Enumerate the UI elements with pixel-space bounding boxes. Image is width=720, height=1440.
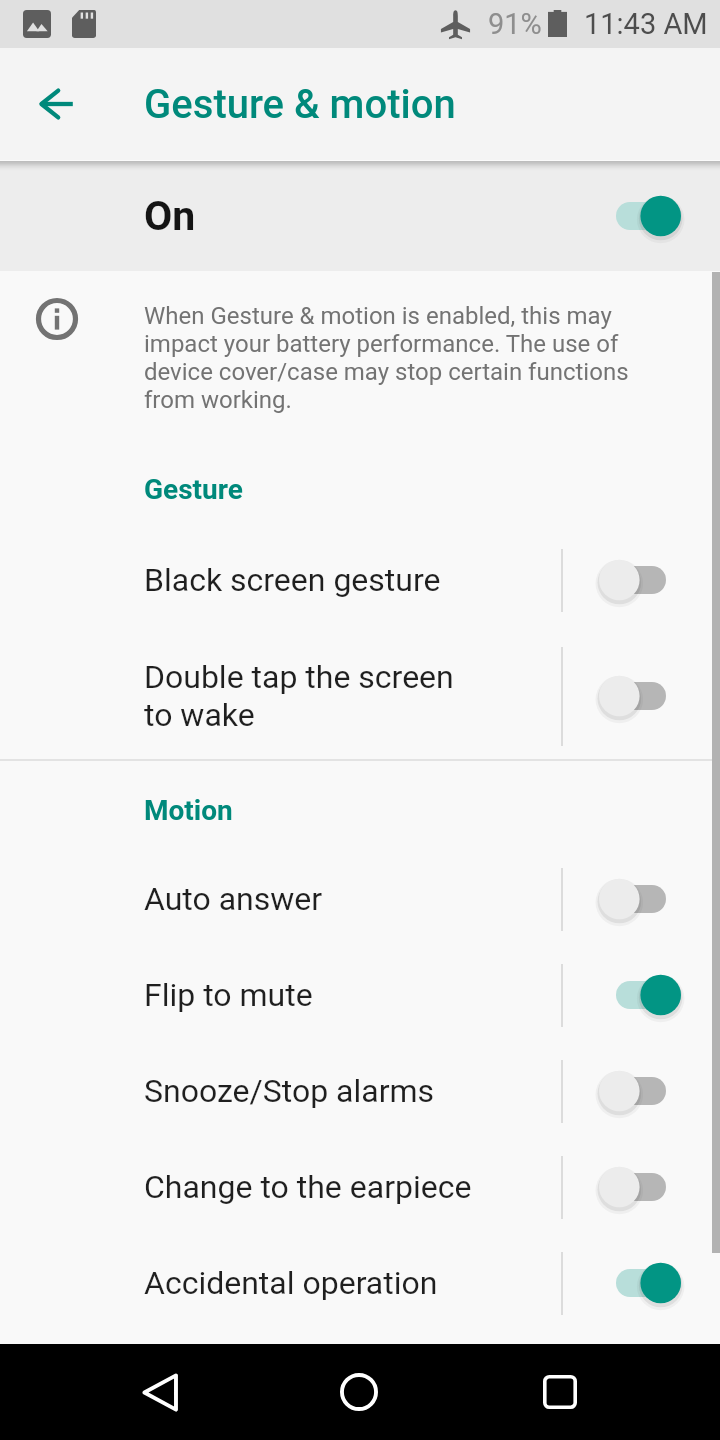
button[interactable]: Auto answer: [0, 851, 720, 947]
button[interactable]: Home: [309, 1344, 409, 1440]
staticText: Black screen gesture: [144, 561, 441, 599]
staticText: Gesture: [144, 473, 243, 506]
button[interactable]: Flip to mute: [0, 947, 720, 1043]
button[interactable]: Change to the earpiece: [0, 1139, 720, 1235]
button[interactable]: Back: [110, 1344, 210, 1440]
button[interactable]: Recent apps: [510, 1344, 610, 1440]
staticText: Flip to mute: [144, 976, 313, 1014]
staticText: Motion: [144, 794, 233, 827]
staticText: On: [144, 192, 196, 240]
staticText: Auto answer: [144, 880, 323, 918]
button[interactable]: Black screen gesture: [0, 532, 720, 628]
staticText: When Gesture & motion is enabled, this m…: [144, 302, 640, 414]
staticText: Snooze/Stop alarms: [144, 1072, 435, 1110]
button[interactable]: Snooze/Stop alarms: [0, 1043, 720, 1139]
staticText: Double tap the screen to wake: [144, 658, 454, 734]
staticText: Change to the earpiece: [144, 1168, 472, 1206]
button[interactable]: Navigate up: [0, 48, 112, 160]
staticText: 11:43 AM: [584, 7, 708, 41]
staticText: Gesture & motion: [144, 81, 456, 128]
staticText: 91%: [488, 7, 542, 41]
button[interactable]: Accidental operation: [0, 1235, 720, 1331]
button[interactable]: Double tap the screen to wake: [0, 630, 720, 762]
staticText: Accidental operation: [144, 1264, 438, 1302]
button[interactable]: On: [0, 160, 720, 271]
